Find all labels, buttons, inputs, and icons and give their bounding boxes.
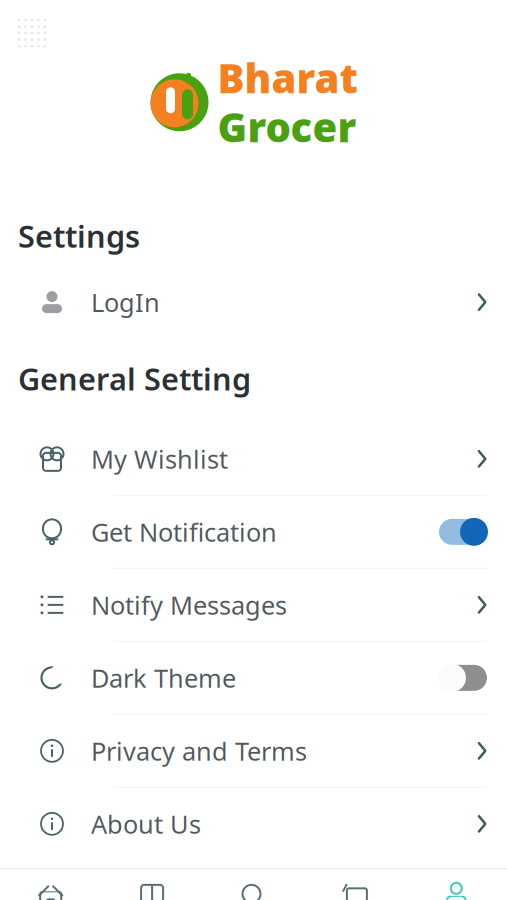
- button[interactable]: Home: [0, 869, 101, 900]
- button[interactable]: Cart: [304, 869, 406, 900]
- button[interactable]: My Wishlist: [0, 423, 507, 496]
- staticText: Bharat: [217, 51, 357, 104]
- button[interactable]: Account: [406, 869, 507, 900]
- button[interactable]: Privacy and Terms: [0, 715, 507, 788]
- staticText: Settings: [18, 215, 140, 256]
- staticText: General Setting: [18, 358, 251, 399]
- button[interactable]: Categories: [101, 869, 203, 900]
- button[interactable]: Dark Theme: [0, 642, 507, 715]
- button[interactable]: Notify Messages: [0, 569, 507, 642]
- button[interactable]: LogIn: [0, 266, 507, 338]
- staticText: Get Notification: [91, 515, 277, 549]
- staticText: Notify Messages: [91, 588, 287, 622]
- staticText: My Wishlist: [91, 442, 228, 476]
- staticText: About Us: [91, 807, 201, 841]
- staticText: Dark Theme: [91, 661, 236, 695]
- button[interactable]: Search: [203, 869, 304, 900]
- staticText: LogIn: [91, 285, 160, 319]
- button[interactable]: Get Notification: [0, 496, 507, 569]
- button[interactable]: About Us: [0, 788, 507, 860]
- staticText: Grocer: [217, 100, 356, 153]
- staticText: Privacy and Terms: [91, 734, 307, 768]
